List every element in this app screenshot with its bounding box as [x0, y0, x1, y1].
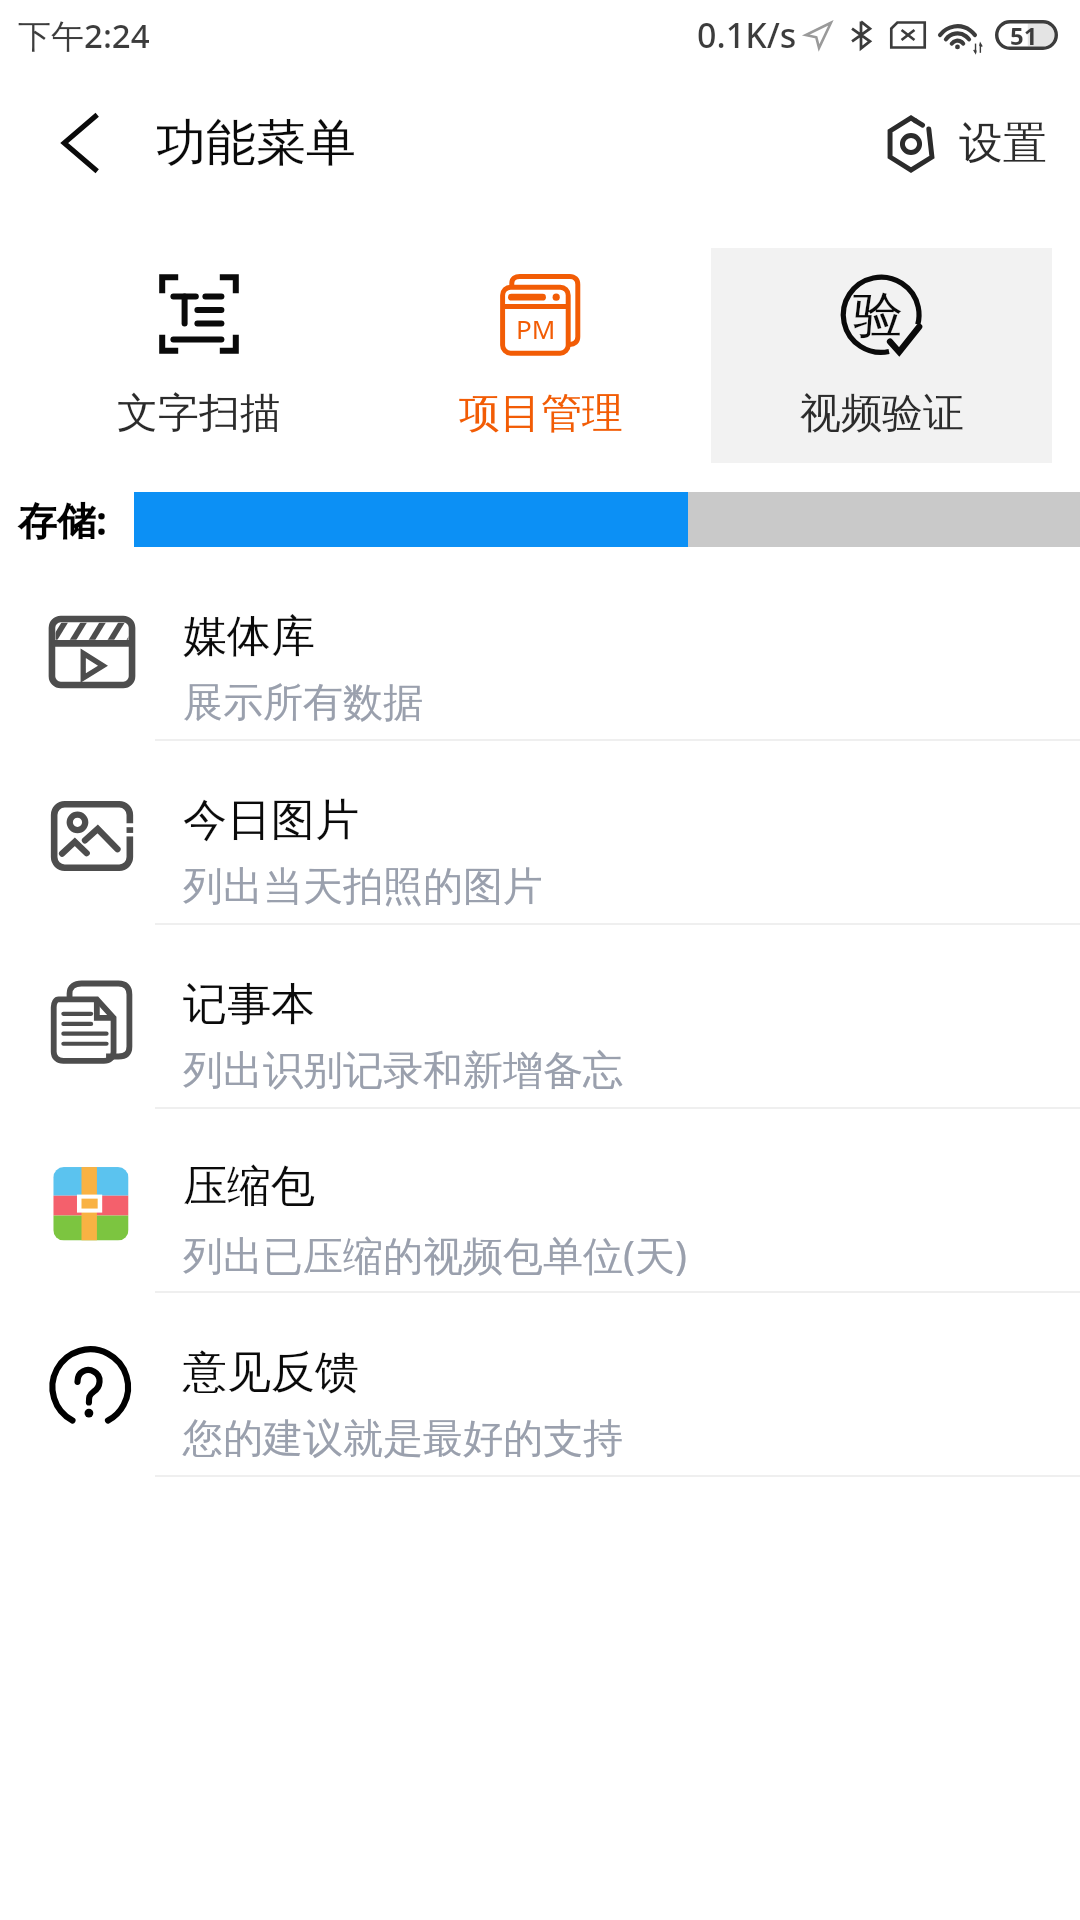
- staticText: 存储:: [18, 493, 107, 546]
- staticText: 验: [853, 284, 903, 347]
- staticText: 视频验证: [800, 388, 964, 440]
- staticText: 压缩包: [183, 1159, 315, 1214]
- staticText: 51: [1010, 19, 1038, 49]
- staticText: 意见反馈: [183, 1345, 359, 1400]
- button[interactable]: 设置: [879, 104, 1053, 183]
- staticText: 媒体库: [183, 609, 315, 664]
- button[interactable]: 意见反馈: [0, 1293, 1080, 1477]
- staticText: 列出已压缩的视频包单位(天): [183, 1227, 687, 1282]
- button[interactable]: PM: [370, 248, 711, 463]
- staticText: 功能菜单: [156, 112, 356, 175]
- staticText: 展示所有数据: [183, 677, 423, 727]
- button[interactable]: 压缩包: [0, 1109, 1080, 1293]
- button[interactable]: 验: [711, 248, 1052, 463]
- staticText: 列出当天拍照的图片: [183, 861, 543, 911]
- staticText: 设置: [959, 116, 1047, 171]
- button[interactable]: Back: [34, 93, 134, 193]
- staticText: 列出识别记录和新增备忘: [183, 1045, 623, 1095]
- button[interactable]: 记事本: [0, 925, 1080, 1109]
- button[interactable]: 媒体库: [0, 557, 1080, 741]
- staticText: 0.1K/s: [697, 12, 797, 58]
- button[interactable]: 今日图片: [0, 741, 1080, 925]
- staticText: 记事本: [183, 977, 315, 1032]
- staticText: 下午2:24: [18, 13, 150, 58]
- staticText: 您的建议就是最好的支持: [183, 1413, 623, 1463]
- staticText: 今日图片: [183, 793, 359, 848]
- staticText: 文字扫描: [117, 388, 281, 440]
- staticText: PM: [516, 311, 556, 346]
- staticText: 项目管理: [459, 388, 623, 440]
- button[interactable]: 文字扫描: [28, 248, 370, 463]
